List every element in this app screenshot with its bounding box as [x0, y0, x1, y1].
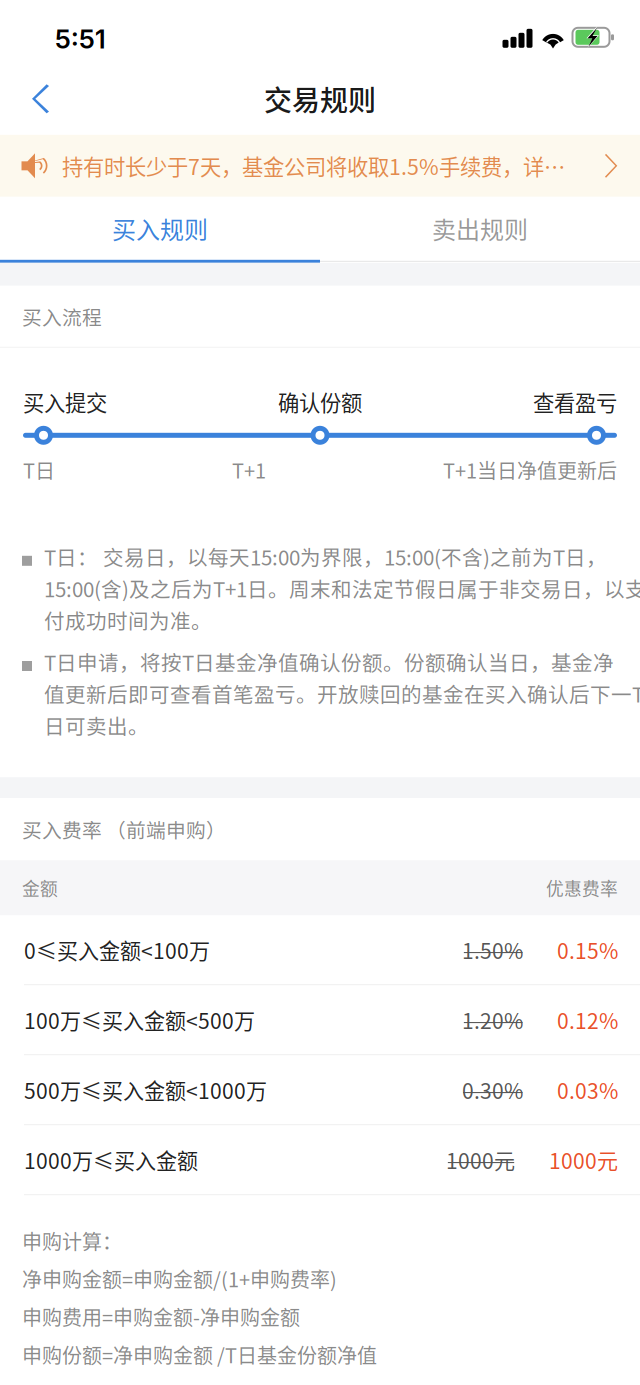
- staticText: 1.50%: [462, 934, 523, 965]
- staticText: T+1: [232, 455, 266, 484]
- staticText: 优惠费率: [546, 875, 618, 901]
- staticText: 5:51: [55, 23, 106, 55]
- staticText: 1000元: [549, 1144, 618, 1175]
- staticText: 持有时长少于7天，基金公司将收取1.5%手续费，详…: [62, 150, 565, 181]
- staticText: 净申购金额=申购金额/(1+申购费率): [22, 1264, 337, 1293]
- staticText: T+1当日净值更新后: [443, 455, 617, 484]
- staticText: T日: [23, 455, 55, 484]
- staticText: 0.12%: [557, 1004, 618, 1035]
- staticText: 确认份额: [278, 386, 362, 417]
- staticText: 买入流程: [22, 302, 102, 331]
- staticText: 申购费用=申购金额-净申购金额: [22, 1302, 300, 1331]
- staticText: 付成功时间为准。: [44, 605, 212, 635]
- staticText: 0.30%: [462, 1074, 523, 1105]
- staticText: T日申请，将按T日基金净值确认份额。份额确认当日，基金净: [44, 647, 614, 677]
- staticText: 查看盈亏: [533, 386, 617, 417]
- staticText: 0.15%: [557, 934, 618, 965]
- staticText: 买入费率 （前端申购）: [22, 815, 226, 843]
- staticText: 1000元: [446, 1144, 515, 1175]
- staticText: 0≤买入金额<100万: [24, 934, 210, 965]
- button[interactable]: 卖出规则: [320, 197, 640, 260]
- staticText: 买入提交: [23, 386, 107, 417]
- staticText: 值更新后即可查看首笔盈亏。开放赎回的基金在买入确认后下一T: [44, 679, 640, 708]
- staticText: 1.20%: [462, 1004, 523, 1035]
- staticText: 买入规则: [112, 211, 208, 246]
- staticText: 申购份额=净申购金额 /T日基金份额净值: [22, 1340, 377, 1369]
- button[interactable]: 买入规则: [0, 197, 320, 260]
- staticText: 15:00(含)及之后为T+1日。周末和法定节假日属于非交易日，以支: [44, 573, 640, 603]
- staticText: 100万≤买入金额<500万: [24, 1004, 255, 1035]
- staticText: 申购计算：: [22, 1226, 122, 1255]
- staticText: 卖出规则: [432, 211, 528, 246]
- staticText: 金额: [22, 875, 58, 901]
- button[interactable]: 返回: [0, 67, 73, 131]
- staticText: 500万≤买入金额<1000万: [24, 1074, 267, 1105]
- staticText: 0.03%: [557, 1074, 618, 1105]
- staticText: 日可卖出。: [44, 710, 149, 740]
- button[interactable]: 持有时长少于7天，基金公司将收取1.5%手续费，详…: [0, 135, 640, 197]
- staticText: 交易规则: [264, 78, 376, 119]
- staticText: T日： 交易日，以每天15:00为界限，15:00(不含)之前为T日，: [44, 542, 607, 571]
- staticText: 1000万≤买入金额: [24, 1144, 198, 1175]
